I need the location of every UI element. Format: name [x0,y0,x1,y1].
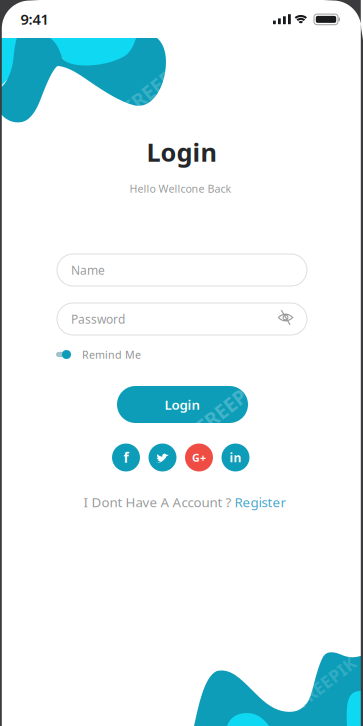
staticText: I Dont Have A Account ? [83,493,231,511]
staticText: Login [146,135,216,169]
button[interactable]: G+ [185,443,213,471]
staticText: FREEPIK [189,392,268,418]
button[interactable]: Password [57,303,307,335]
staticText: Login [164,396,200,413]
staticText: FREEPIK [116,73,195,99]
staticText: in [229,449,241,465]
button[interactable]: Name [57,254,307,286]
button[interactable]: I Dont Have A Account ? [83,493,286,511]
staticText: Password [71,311,125,327]
button[interactable] [274,306,296,328]
staticText: Name [71,262,105,278]
button[interactable] [55,349,71,360]
staticText: G+ [192,450,206,465]
staticText: Register [234,493,286,511]
staticText: f [123,449,128,466]
button[interactable]: in [221,443,249,471]
staticText: Hello Wellcone Back [129,181,231,196]
staticText: 9:41 [20,9,48,29]
button[interactable] [148,443,176,471]
staticText: FREEPIK [290,670,361,693]
staticText: Remind Me [82,347,141,362]
button[interactable]: Login [117,386,248,423]
button[interactable]: f [112,443,140,471]
